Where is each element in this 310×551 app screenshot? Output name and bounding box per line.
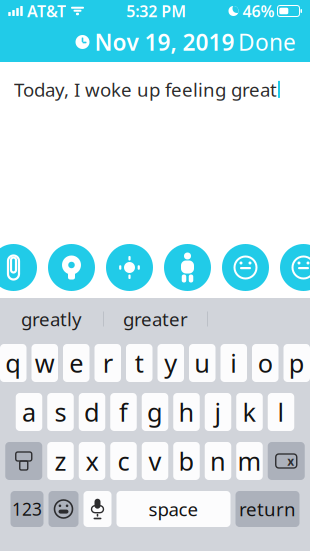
button[interactable]: r	[94, 344, 121, 382]
button[interactable]: space	[116, 491, 230, 527]
staticText: v	[148, 444, 161, 478]
button[interactable]: n	[205, 442, 231, 480]
button[interactable]: Done	[224, 18, 310, 66]
button[interactable]: j	[205, 393, 231, 431]
button[interactable]: More	[280, 244, 310, 291]
button[interactable]: c	[110, 442, 137, 480]
staticText: x	[85, 444, 98, 478]
button[interactable]: Dictate	[83, 491, 111, 527]
button[interactable]: a	[16, 393, 42, 431]
button[interactable]: q	[0, 344, 26, 382]
staticText: greatly	[21, 307, 82, 331]
button[interactable]: Weather	[106, 244, 153, 291]
button[interactable]: o	[252, 344, 278, 382]
button[interactable]: Mood	[222, 244, 269, 291]
staticText: c	[117, 444, 129, 478]
staticText: q	[5, 346, 21, 380]
staticText: x	[287, 453, 294, 469]
button[interactable]: z	[47, 442, 74, 480]
button[interactable]: f	[110, 393, 137, 431]
staticText: b	[178, 444, 194, 478]
staticText: r	[103, 346, 113, 380]
staticText: a	[22, 395, 36, 429]
button[interactable]: Delete	[268, 442, 305, 480]
staticText: g	[147, 395, 163, 429]
button[interactable]: x	[79, 442, 105, 480]
button[interactable]: t	[126, 344, 152, 382]
staticText: f	[119, 395, 128, 429]
staticText: p	[289, 346, 305, 380]
button[interactable]: b	[173, 442, 200, 480]
button[interactable]: Attach	[0, 244, 37, 291]
button[interactable]: e	[63, 344, 89, 382]
staticText: return	[239, 497, 296, 521]
button[interactable]: g	[142, 393, 168, 431]
button[interactable]: y	[157, 344, 184, 382]
staticText: AT&T	[27, 0, 66, 22]
button[interactable]: p	[283, 344, 310, 382]
button[interactable]: Activity	[164, 244, 211, 291]
staticText: j	[214, 395, 221, 429]
staticText: m	[237, 444, 261, 478]
staticText: y	[164, 346, 177, 380]
button[interactable]: return	[235, 491, 299, 527]
button[interactable]: d	[79, 393, 105, 431]
button[interactable]: i	[220, 344, 247, 382]
staticText: t	[135, 346, 144, 380]
button[interactable]: greater	[104, 299, 207, 339]
staticText: w	[35, 346, 55, 380]
staticText: 123	[12, 497, 42, 520]
button[interactable]: v	[142, 442, 168, 480]
button[interactable]: greatly	[0, 299, 103, 339]
staticText: space	[148, 497, 198, 521]
staticText: 46%	[242, 0, 274, 22]
staticText: Today, I woke up feeling great	[14, 77, 277, 102]
button[interactable]: s	[47, 393, 74, 431]
staticText: u	[194, 346, 210, 380]
staticText: d	[84, 395, 100, 429]
button[interactable]: k	[236, 393, 263, 431]
staticText: h	[178, 395, 194, 429]
button[interactable]: 123	[10, 491, 43, 527]
staticText: Nov 19, 2019	[94, 27, 234, 57]
button[interactable]: w	[31, 344, 58, 382]
button[interactable]: Shift	[5, 442, 42, 480]
button[interactable]: h	[173, 393, 200, 431]
staticText: o	[258, 346, 273, 380]
button[interactable]: u	[189, 344, 215, 382]
staticText: 5:32 PM	[126, 0, 186, 22]
button[interactable]: l	[268, 393, 294, 431]
button[interactable]: Emoji keyboard	[48, 491, 78, 527]
staticText: s	[54, 395, 66, 429]
staticText: l	[277, 395, 284, 429]
staticText: k	[242, 395, 256, 429]
button[interactable]: m	[236, 442, 263, 480]
staticText: greater	[123, 307, 188, 331]
staticText: z	[54, 444, 66, 478]
button[interactable]: Location	[48, 244, 95, 291]
staticText: e	[69, 346, 83, 380]
staticText: Done	[238, 27, 296, 57]
staticText: n	[210, 444, 226, 478]
staticText: i	[230, 346, 237, 380]
